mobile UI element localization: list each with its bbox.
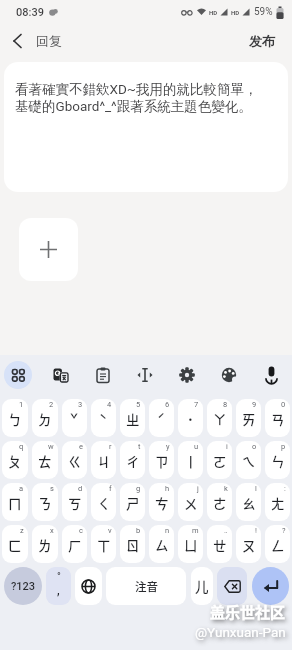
staticText: 发布 [249, 33, 275, 49]
staticText: ㄆ [8, 451, 22, 471]
button[interactable]: w [32, 441, 58, 479]
button[interactable] [208, 355, 250, 395]
staticText: 注音 [135, 578, 158, 595]
staticText: ㄉ [38, 409, 52, 429]
button[interactable] [252, 567, 289, 605]
button[interactable]: 6 [149, 399, 174, 437]
staticText: 08:39 [16, 6, 44, 19]
button[interactable] [166, 355, 208, 395]
button[interactable]: 9 [236, 399, 261, 437]
staticText: ㄤ [271, 493, 285, 513]
staticText: ° [57, 571, 61, 583]
staticText: ㄞ [242, 409, 256, 429]
staticText: 基礎的Gboard^_^跟著系統主題色變化。 [15, 98, 252, 115]
button[interactable]: l [236, 483, 261, 521]
button[interactable]: c [62, 525, 87, 563]
staticText: 儿 [195, 576, 209, 596]
button[interactable]: y [149, 441, 174, 479]
button[interactable]: r [91, 441, 116, 479]
staticText: HD [231, 9, 240, 16]
staticText: 7 [194, 400, 199, 409]
button[interactable]: n [149, 525, 174, 563]
button[interactable]: : [265, 483, 290, 521]
staticText: o [252, 442, 257, 451]
button[interactable]: 4 [91, 399, 116, 437]
staticText: ˙ [187, 409, 194, 429]
button[interactable]: 3 [62, 399, 87, 437]
staticText: ㄒ [97, 535, 111, 555]
staticText: b [136, 526, 141, 535]
button[interactable]: 2 [32, 399, 58, 437]
staticText: ㄏ [68, 535, 82, 555]
button[interactable]: ? [265, 525, 290, 563]
button[interactable]: j [178, 483, 203, 521]
staticText: s [50, 484, 54, 493]
staticText: w [48, 442, 54, 451]
staticText: ㄊ [38, 451, 52, 471]
button[interactable]: ?123 [4, 567, 42, 605]
staticText: u [194, 442, 199, 451]
staticText: ㄟ [242, 451, 256, 471]
button[interactable]: p [265, 441, 290, 479]
button[interactable] [75, 567, 102, 605]
staticText: 丨 [184, 451, 198, 471]
staticText: ? [282, 526, 286, 535]
staticText: ㄜ [213, 493, 227, 513]
button[interactable]: 7 [178, 399, 203, 437]
staticText: x [50, 526, 54, 535]
button[interactable] [19, 218, 78, 281]
button[interactable]: g [120, 483, 145, 521]
button[interactable]: a [2, 483, 28, 521]
button[interactable]: m [178, 525, 203, 563]
button[interactable]: 5 [120, 399, 145, 437]
button[interactable]: h [149, 483, 174, 521]
staticText: ˊ [157, 409, 166, 429]
button[interactable] [217, 567, 247, 605]
button[interactable]: 1 [2, 399, 28, 437]
staticText: k [224, 484, 228, 493]
staticText: 4 [107, 400, 112, 409]
button[interactable]: d [62, 483, 87, 521]
staticText: ㄘ [155, 493, 169, 513]
button[interactable]: t [120, 441, 145, 479]
button[interactable] [4, 361, 32, 389]
button[interactable]: x [32, 525, 58, 563]
button[interactable]: ! [236, 525, 261, 563]
staticText: , [57, 584, 60, 598]
button[interactable]: q [2, 441, 28, 479]
staticText: ㄇ [8, 493, 22, 513]
button[interactable] [250, 355, 292, 395]
button[interactable]: o [236, 441, 261, 479]
button[interactable]: 发布 [232, 27, 292, 55]
button[interactable]: z [2, 525, 28, 563]
staticText: 9 [252, 400, 257, 409]
button[interactable]: ° [46, 567, 71, 605]
button[interactable] [124, 355, 166, 395]
staticText: ㄝ [213, 535, 227, 555]
button[interactable]: 8 [207, 399, 232, 437]
button[interactable]: i [207, 441, 232, 479]
button[interactable] [82, 355, 124, 395]
button[interactable] [40, 355, 82, 395]
staticText: ㄥ [271, 535, 285, 555]
staticText: ㄌ [38, 535, 52, 555]
staticText: a [19, 484, 24, 493]
staticText: c [79, 526, 83, 535]
button[interactable]: ‥ [207, 525, 232, 563]
button[interactable] [0, 24, 34, 58]
button[interactable]: b [120, 525, 145, 563]
button[interactable]: 儿 [191, 567, 213, 605]
staticText: z [20, 526, 24, 535]
button[interactable]: k [207, 483, 232, 521]
staticText: 5 [136, 400, 141, 409]
button[interactable]: 0 [265, 399, 290, 437]
button[interactable]: v [91, 525, 116, 563]
button[interactable]: s [32, 483, 58, 521]
button[interactable]: u [178, 441, 203, 479]
button[interactable]: e [62, 441, 87, 479]
button[interactable]: 注音 [106, 567, 186, 605]
staticText: ㄓ [126, 409, 140, 429]
button[interactable]: f [91, 483, 116, 521]
staticText: 2 [49, 400, 54, 409]
staticText: h [165, 484, 170, 493]
